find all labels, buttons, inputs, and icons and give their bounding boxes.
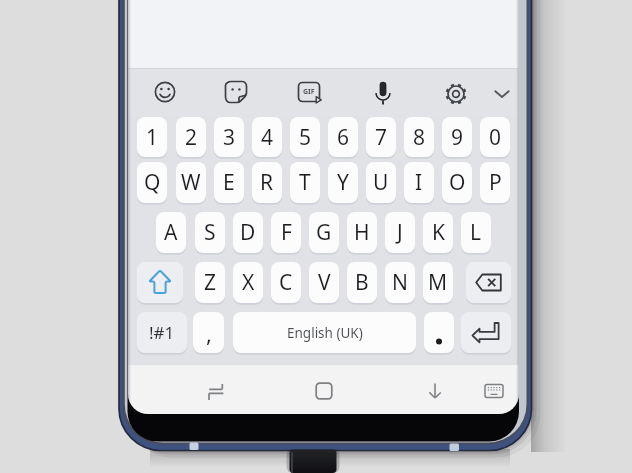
button[interactable]: 6 (328, 117, 358, 157)
staticText: J (397, 218, 403, 247)
button[interactable]: 7 (366, 117, 396, 157)
button[interactable]: GIF (295, 78, 323, 106)
staticText: O (449, 168, 466, 197)
staticText: Q (144, 168, 161, 197)
button[interactable]: K (423, 212, 453, 253)
button[interactable]: 0 (480, 117, 510, 157)
staticText: English (UK) (287, 324, 363, 342)
button[interactable]: J (385, 212, 415, 253)
button[interactable]: O (442, 162, 472, 203)
button[interactable]: English (UK) (233, 312, 416, 353)
button[interactable]: 8 (404, 117, 434, 157)
button[interactable] (221, 77, 251, 107)
button[interactable]: C (271, 262, 301, 303)
button[interactable]: S (195, 212, 225, 253)
staticText: 3 (223, 123, 236, 152)
button[interactable] (441, 79, 471, 109)
staticText: L (470, 218, 482, 247)
staticText: !#1 (149, 321, 175, 344)
button[interactable] (137, 262, 183, 303)
staticText: 2 (185, 123, 198, 152)
button[interactable]: X (233, 262, 263, 303)
staticText: S (204, 218, 216, 247)
button[interactable] (490, 84, 514, 104)
button[interactable]: T (290, 162, 320, 203)
staticText: 5 (299, 123, 312, 152)
staticText: Z (204, 268, 217, 297)
staticText: R (260, 168, 274, 197)
button[interactable]: R (252, 162, 282, 203)
button[interactable] (466, 262, 511, 303)
button[interactable]: 9 (442, 117, 472, 157)
button[interactable]: W (176, 162, 206, 203)
button[interactable]: M (423, 262, 453, 303)
button[interactable]: Y (328, 162, 358, 203)
button[interactable]: L (461, 212, 491, 253)
button[interactable]: E (214, 162, 244, 203)
staticText: , (206, 318, 212, 348)
staticText: A (164, 218, 178, 247)
staticText: 8 (413, 123, 426, 152)
staticText: F (281, 218, 292, 247)
staticText: C (279, 268, 293, 297)
button[interactable] (307, 374, 341, 408)
button[interactable]: Z (195, 262, 225, 303)
button[interactable]: , (193, 312, 224, 353)
staticText: N (392, 268, 408, 297)
staticText: E (223, 168, 235, 197)
button[interactable]: H (347, 212, 377, 253)
staticText: P (489, 168, 502, 197)
staticText: T (299, 168, 311, 197)
staticText: V (318, 268, 331, 297)
button[interactable] (368, 78, 398, 108)
button[interactable]: 5 (290, 117, 320, 157)
button[interactable]: A (156, 212, 186, 253)
button[interactable]: I (404, 162, 434, 203)
button[interactable]: 1 (137, 117, 167, 157)
staticText: GIF (303, 87, 315, 97)
button[interactable]: F (271, 212, 301, 253)
staticText: 4 (261, 123, 274, 152)
staticText: 9 (451, 123, 464, 152)
staticText: G (316, 218, 332, 247)
button[interactable] (480, 378, 508, 404)
button[interactable]: D (233, 212, 263, 253)
staticText: U (373, 168, 389, 197)
button[interactable]: 3 (214, 117, 244, 157)
button[interactable]: B (347, 262, 377, 303)
staticText: K (432, 218, 445, 247)
button[interactable]: Q (137, 162, 167, 203)
button[interactable] (150, 77, 180, 107)
button[interactable]: G (309, 212, 339, 253)
staticText: 7 (375, 123, 388, 152)
staticText: M (428, 268, 448, 297)
button[interactable]: U (366, 162, 396, 203)
button[interactable] (424, 312, 454, 353)
staticText: I (415, 168, 423, 197)
button[interactable]: V (309, 262, 339, 303)
button[interactable] (199, 375, 233, 409)
staticText: 1 (146, 123, 159, 152)
staticText: B (355, 268, 369, 297)
button[interactable]: !#1 (137, 312, 187, 353)
button[interactable]: 2 (176, 117, 206, 157)
button[interactable]: N (385, 262, 415, 303)
staticText: W (181, 168, 201, 197)
staticText: Y (337, 168, 349, 197)
button[interactable]: 4 (252, 117, 282, 157)
staticText: 0 (489, 123, 502, 152)
staticText: 6 (337, 123, 350, 152)
staticText: D (240, 218, 256, 247)
staticText: H (354, 218, 370, 247)
button[interactable] (418, 374, 452, 408)
staticText: X (242, 268, 255, 297)
button[interactable] (461, 312, 511, 353)
button[interactable]: P (480, 162, 510, 203)
